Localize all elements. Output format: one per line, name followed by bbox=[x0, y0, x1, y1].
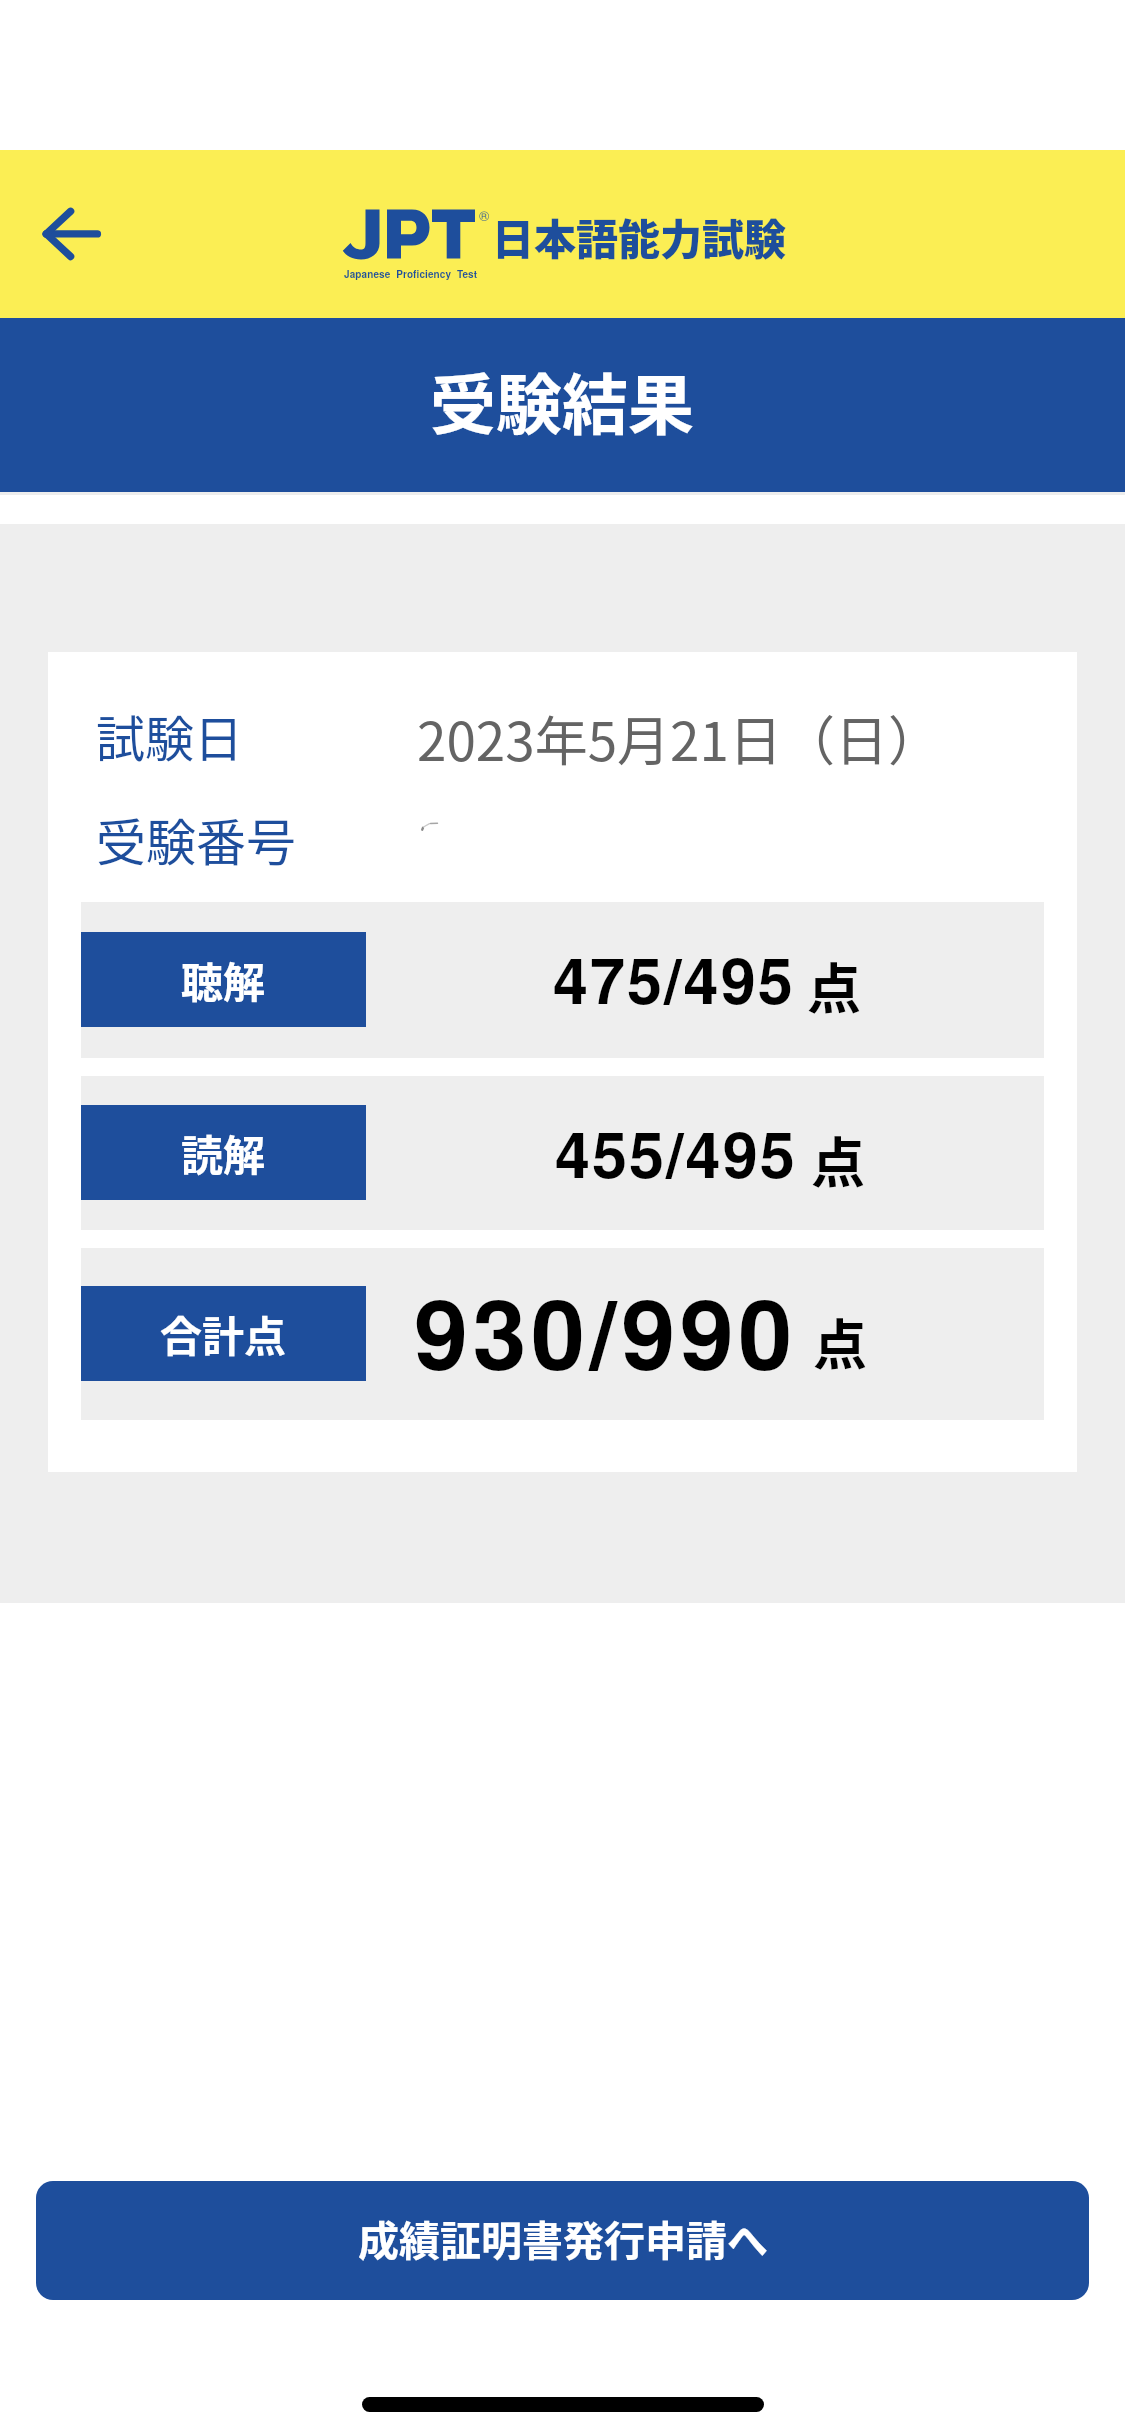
staticText: 455/495 bbox=[555, 1107, 797, 1197]
staticText: 成績証明書発行申請へ bbox=[358, 2208, 768, 2267]
staticText: ® bbox=[479, 205, 490, 225]
staticText: 日本語能力試験 bbox=[492, 206, 787, 267]
staticText: 475/495 bbox=[553, 933, 795, 1023]
staticText: 点 bbox=[807, 946, 861, 1024]
button[interactable]: Back bbox=[12, 176, 128, 292]
staticText: 読解 bbox=[181, 1122, 266, 1183]
staticText: 2023年5月21日（日） bbox=[417, 700, 941, 777]
staticText: 聴解 bbox=[181, 949, 266, 1010]
staticText: 点 bbox=[811, 1120, 865, 1198]
staticText: 受験番号 bbox=[96, 803, 296, 875]
staticText: 受験結果 bbox=[430, 352, 694, 448]
staticText: 合計点 bbox=[160, 1303, 287, 1364]
staticText: Japanese Proficiency Test bbox=[344, 267, 478, 281]
button[interactable]: 成績証明書発行申請へ bbox=[36, 2181, 1089, 2300]
staticText: 試験日 bbox=[96, 700, 244, 771]
staticText: 930/990 bbox=[414, 1261, 797, 1400]
staticText: 点 bbox=[813, 1302, 867, 1380]
